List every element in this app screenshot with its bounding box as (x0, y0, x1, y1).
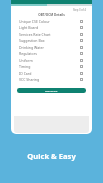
staticText: Uniform (19, 58, 33, 63)
staticText: Regulators (19, 51, 37, 56)
staticText: Services Rate Chart (19, 32, 51, 37)
button[interactable]: Drinking Water (11, 44, 92, 51)
button[interactable]: Uniform (11, 57, 92, 64)
staticText: Quick & Easy (0, 151, 103, 161)
staticText: Step 3 of 4 (73, 8, 86, 12)
button[interactable]: VCC Sharing (11, 76, 92, 83)
button[interactable]: Services Rate Chart (11, 31, 92, 38)
button[interactable]: Suggestion Box (11, 37, 92, 44)
staticText: Drinking Water (19, 45, 44, 50)
staticText: ID Card (19, 71, 32, 76)
button[interactable]: Regulators (11, 50, 92, 57)
button[interactable]: CONTINUE (17, 88, 86, 93)
staticText: OBT/OCM Details (11, 13, 92, 17)
staticText: Light Board (19, 25, 39, 30)
staticText: Suggestion Box (19, 38, 45, 43)
button[interactable]: Light Board (11, 24, 92, 31)
staticText: Unique CSE Colour (19, 19, 50, 24)
button[interactable]: ID Card (11, 70, 92, 77)
staticText: Timing (19, 64, 31, 69)
button[interactable]: Timing (11, 63, 92, 70)
staticText: CONTINUE (45, 89, 58, 92)
staticText: VCC Sharing (19, 77, 40, 82)
button[interactable]: Unique CSE Colour (11, 18, 92, 25)
